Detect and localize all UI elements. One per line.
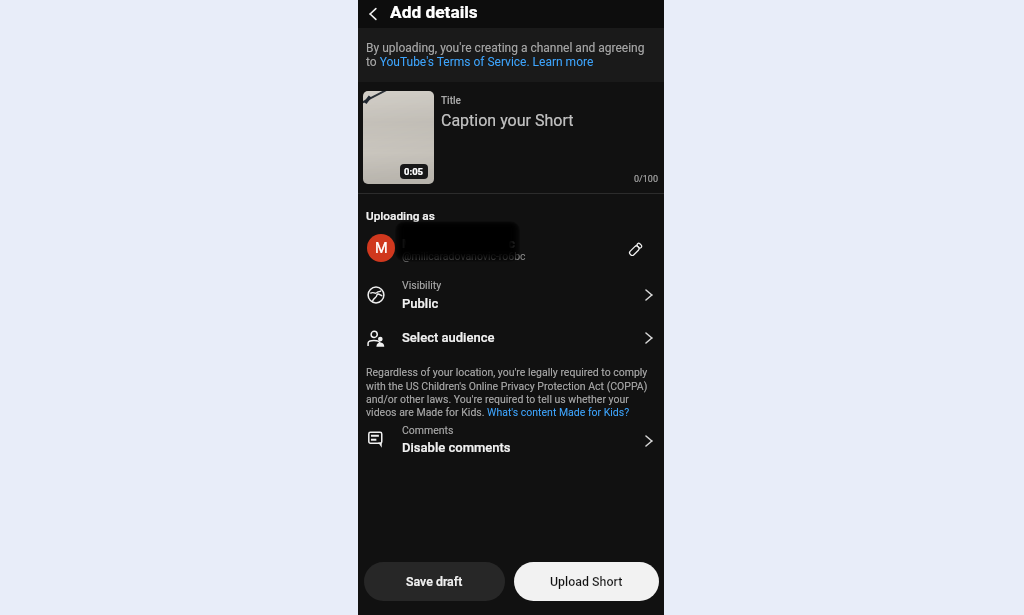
staticText: Disable comments	[402, 440, 511, 455]
button[interactable]	[358, 422, 664, 466]
staticText: Uploading as	[366, 209, 435, 223]
button[interactable]: Upload Short	[514, 562, 659, 601]
staticText: Title	[441, 95, 461, 107]
staticText: 0/100	[634, 174, 658, 185]
button[interactable]	[358, 320, 664, 360]
staticText: Comments	[402, 424, 454, 436]
staticText: 0:05	[404, 166, 424, 177]
staticText: Upload Short	[550, 574, 623, 589]
button[interactable]: Edit channel name	[624, 238, 646, 260]
button[interactable]	[358, 274, 664, 318]
staticText: Caption your Short	[441, 111, 574, 130]
staticText: Regardless of your location, you're lega…	[366, 366, 652, 418]
staticText: Public	[402, 296, 439, 311]
staticText: Select audience	[402, 330, 495, 345]
staticText: M	[375, 240, 388, 257]
other: Open	[642, 435, 654, 447]
staticText: Save draft	[406, 574, 463, 589]
button[interactable]	[358, 226, 664, 270]
other: Open	[642, 289, 654, 301]
other: Open	[642, 332, 654, 344]
button[interactable]: Save draft	[364, 562, 505, 601]
button[interactable]: Back	[359, 0, 387, 28]
staticText: Add details	[390, 2, 478, 22]
staticText: Visibility	[402, 279, 442, 291]
staticText: @milicaradovanovic-ro6bc	[402, 250, 526, 262]
staticText: By uploading, you're creating a channel …	[366, 41, 651, 69]
